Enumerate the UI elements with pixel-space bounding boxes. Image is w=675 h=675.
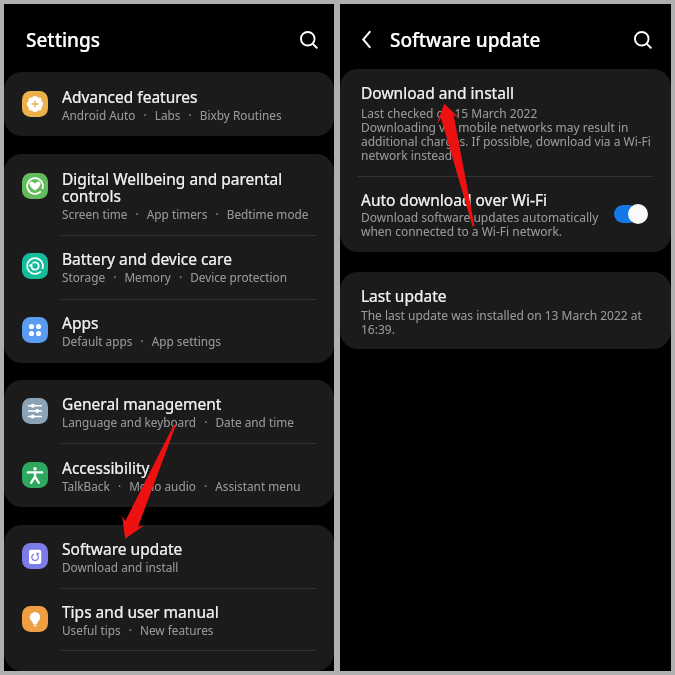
button[interactable]: Tips and user manual <box>4 589 334 650</box>
staticText: Apps <box>62 316 99 333</box>
staticText: Download and install <box>361 86 514 103</box>
button[interactable]: General management <box>4 380 334 443</box>
button[interactable]: Auto download over Wi-Fi <box>340 177 671 252</box>
staticText: Settings <box>26 28 100 52</box>
staticText: Advanced features <box>62 90 198 107</box>
staticText: Useful tips · New features <box>62 624 214 638</box>
staticText: Download and install <box>62 561 179 575</box>
button[interactable]: Search <box>628 26 654 52</box>
staticText: Storage · Memory · Device protection <box>62 271 287 285</box>
button[interactable]: Search <box>294 26 320 52</box>
staticText: Software update <box>390 28 541 52</box>
button[interactable]: Accessibility <box>4 444 334 507</box>
staticText: Tips and user manual <box>62 605 219 622</box>
button[interactable]: Software update <box>4 525 334 588</box>
button[interactable]: Digital Wellbeing and parental controls <box>4 154 334 235</box>
staticText: Screen time · App timers · Bedtime mode <box>62 208 309 222</box>
staticText: General management <box>62 397 222 414</box>
button[interactable]: Advanced features <box>4 72 334 136</box>
staticText: Battery and device care <box>62 252 232 269</box>
staticText: TalkBack · Mono audio · Assistant menu <box>62 480 301 494</box>
staticText: Default apps · App settings <box>62 335 221 349</box>
button[interactable]: Battery and device care <box>4 236 334 299</box>
staticText: Digital Wellbeing and parental controls <box>62 172 320 206</box>
staticText: Android Auto · Labs · Bixby Routines <box>62 109 282 123</box>
staticText: Download software updates automatically … <box>361 211 599 239</box>
button[interactable]: Download and install <box>340 69 671 176</box>
button[interactable]: Apps <box>4 300 334 363</box>
button[interactable]: Back <box>355 25 381 51</box>
staticText: The last update was installed on 13 Marc… <box>361 309 642 337</box>
staticText: Last checked on 15 March 2022 Downloadin… <box>361 107 651 163</box>
button[interactable]: Last update <box>340 272 671 349</box>
staticText: Language and keyboard · Date and time <box>62 416 294 430</box>
staticText: Accessibility <box>62 461 150 478</box>
staticText: Auto download over Wi-Fi <box>361 193 548 210</box>
staticText: Last update <box>361 289 447 306</box>
button[interactable]: About phone <box>4 651 334 671</box>
staticText: Software update <box>62 542 183 559</box>
